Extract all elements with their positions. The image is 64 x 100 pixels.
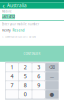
staticText: A confirmation SMS will be sent (2, 35, 36, 38)
staticText: CONTINUER (23, 52, 40, 56)
button[interactable]: 4 (6, 72, 18, 80)
staticText: ‹ (2, 1, 4, 10)
button[interactable]: 0 (19, 90, 32, 98)
staticText: 7 (11, 82, 14, 89)
button[interactable]: ⌫ (46, 63, 58, 71)
staticText: 6 (37, 73, 40, 80)
button[interactable]: 1 (6, 63, 18, 71)
button[interactable] (6, 90, 18, 98)
staticText: 2 (24, 64, 27, 71)
button[interactable]: 6 (32, 72, 45, 80)
button[interactable]: CONTINUER (22, 51, 41, 57)
staticText: 0 (24, 91, 27, 98)
staticText: Enter your mobile number (2, 22, 39, 26)
staticText: 1 (11, 64, 14, 71)
staticText: 4 (11, 73, 14, 80)
button[interactable]: 2 (19, 63, 32, 71)
staticText: — (50, 74, 54, 79)
button[interactable]: 9 (32, 81, 45, 89)
staticText: 5 (24, 73, 27, 80)
staticText: 9 (37, 82, 40, 89)
staticText: Resend (12, 28, 24, 32)
button[interactable]: Back (0, 2, 7, 9)
button[interactable]: 7 (6, 81, 18, 89)
staticText: 3 (37, 64, 40, 71)
button[interactable]: — (46, 72, 58, 80)
button[interactable] (32, 90, 45, 98)
staticText: Verify (2, 28, 11, 32)
button[interactable]: 3 (32, 63, 45, 71)
button[interactable]: 5 (19, 72, 32, 80)
button[interactable] (46, 81, 58, 89)
staticText: 8 (24, 82, 27, 89)
staticText: ⌫ (49, 65, 55, 70)
staticText: Australia (7, 2, 27, 9)
staticText: ● (49, 91, 54, 97)
staticText: Mobile (2, 10, 12, 13)
button[interactable]: 8 (19, 81, 32, 89)
button[interactable]: ● (46, 90, 58, 98)
staticText: +61 412 (2, 14, 15, 19)
